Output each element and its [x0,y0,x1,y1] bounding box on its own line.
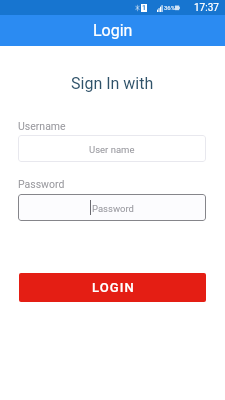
other: Signal strength [157,4,163,12]
staticText: Login [93,21,133,40]
button[interactable]: LOGIN [19,273,206,302]
staticText: User name [89,144,135,155]
staticText: 17:37 [194,2,219,14]
button[interactable]: Password [18,194,206,221]
staticText: 36% [164,4,176,11]
other: Battery [175,4,180,11]
staticText: LOGIN [92,280,135,295]
staticText: 1 [142,4,147,12]
staticText: Password [18,178,65,190]
staticText: Username [18,120,66,132]
button[interactable]: User name [18,135,206,162]
staticText: Sign In with [71,74,154,93]
staticText: Password [92,203,134,214]
other: Sync [135,4,140,12]
